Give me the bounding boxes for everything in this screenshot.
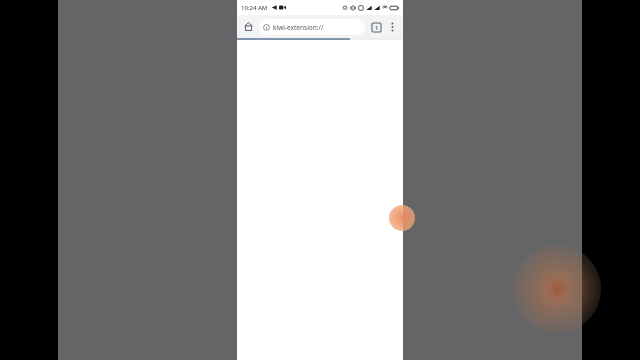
staticText: kiwi-extension://nkbihfbeoga — [273, 23, 361, 32]
staticText: 10:24 AM — [241, 4, 268, 12]
staticText: 1 — [375, 24, 379, 31]
button[interactable]: kiwi-extension://nkbihfbeoga — [259, 19, 365, 35]
button[interactable]: Switch tabs, 1 tab — [368, 19, 384, 35]
button[interactable]: Home — [240, 18, 257, 35]
button[interactable]: More options — [385, 19, 400, 34]
